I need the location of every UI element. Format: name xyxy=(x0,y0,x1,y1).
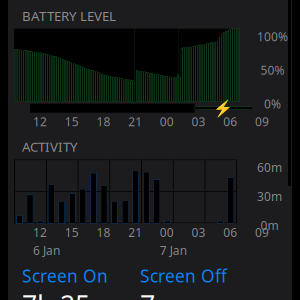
staticText: 18 xyxy=(96,224,110,240)
staticText: ⚡ xyxy=(213,99,233,117)
staticText: 15 xyxy=(65,224,79,240)
staticText: 15 xyxy=(65,114,79,130)
staticText: 06 xyxy=(223,114,237,130)
staticText: 21 xyxy=(128,224,142,240)
staticText: ACTIVITY xyxy=(22,138,78,155)
staticText: 7h 25m xyxy=(22,287,115,300)
staticText: 6 Jan xyxy=(33,242,60,258)
staticText: 100% xyxy=(257,29,288,45)
staticText: 09 xyxy=(255,114,269,130)
staticText: 03 xyxy=(192,224,206,240)
staticText: 7m xyxy=(140,287,180,300)
button[interactable]: Screen Off xyxy=(140,264,260,300)
staticText: Screen Off xyxy=(140,264,227,287)
staticText: 30m xyxy=(257,188,282,204)
staticText: 00 xyxy=(160,224,174,240)
button[interactable]: Screen On xyxy=(22,264,140,300)
staticText: 06 xyxy=(223,224,237,240)
staticText: 0% xyxy=(264,96,281,112)
staticText: 03 xyxy=(192,114,206,130)
staticText: BATTERY LEVEL xyxy=(22,7,116,25)
staticText: 00 xyxy=(160,114,174,130)
staticText: 12 xyxy=(33,224,47,240)
staticText: 50% xyxy=(260,62,284,78)
staticText: 12 xyxy=(33,114,47,130)
staticText: 0m xyxy=(260,217,278,233)
staticText: 21 xyxy=(128,114,142,130)
staticText: 7 Jan xyxy=(160,242,187,258)
staticText: 09 xyxy=(255,224,269,240)
staticText: Screen On xyxy=(22,264,108,287)
staticText: 18 xyxy=(96,114,110,130)
staticText: 60m xyxy=(257,159,282,175)
